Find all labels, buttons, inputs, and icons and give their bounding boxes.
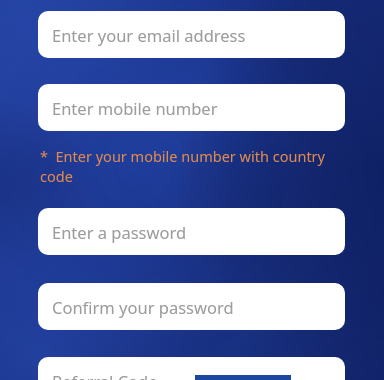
button[interactable]: Enter mobile number bbox=[38, 84, 345, 131]
staticText: Confirm your password bbox=[52, 296, 234, 318]
button[interactable]: Enter your email address bbox=[38, 11, 345, 58]
staticText: Enter your email address bbox=[52, 24, 246, 46]
button[interactable]: Confirm your password bbox=[38, 283, 345, 330]
staticText: Referral Code bbox=[52, 370, 158, 380]
button[interactable]: Enter a password bbox=[38, 208, 345, 255]
button[interactable]: Referral Code bbox=[38, 357, 345, 380]
staticText: Enter a password bbox=[52, 221, 187, 243]
staticText: * Enter your mobile number with country … bbox=[40, 146, 325, 186]
staticText: Enter mobile number bbox=[52, 97, 218, 119]
